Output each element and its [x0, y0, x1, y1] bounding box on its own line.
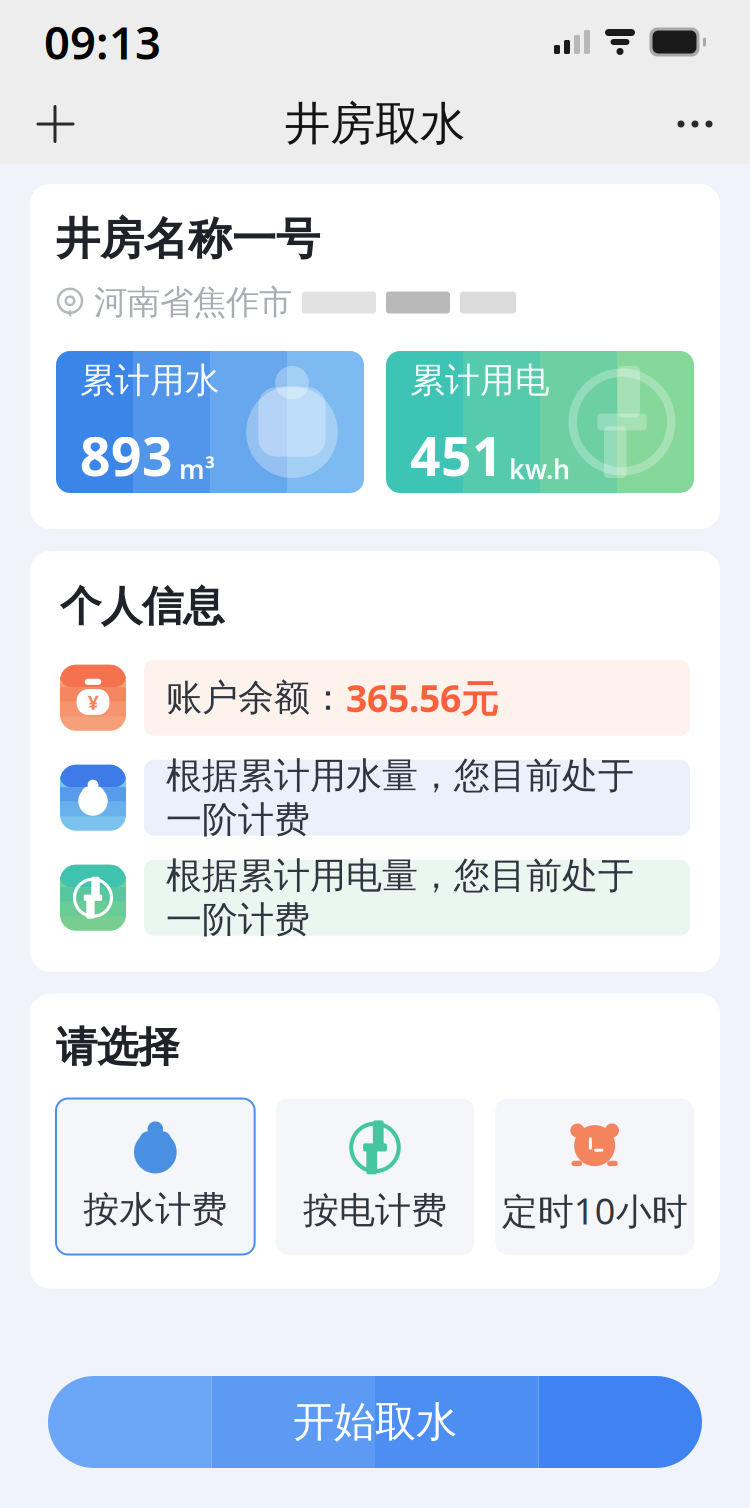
staticText: 365.56元 [346, 673, 498, 723]
button[interactable]: More options [668, 97, 722, 151]
staticText: 累计用水 [80, 359, 220, 402]
staticText: 451 [410, 420, 503, 491]
staticText: 个人信息 [60, 581, 224, 632]
staticText: 河南省焦作市 [94, 282, 292, 323]
staticText: 井房取水 [285, 96, 465, 152]
staticText: 井房名称一号 [56, 212, 320, 266]
staticText: 账户余额： [166, 676, 346, 720]
staticText: kw.h [509, 451, 570, 487]
staticText: 累计用电 [410, 359, 550, 402]
button[interactable]: Close [28, 97, 82, 151]
staticText: 定时10小时 [502, 1187, 688, 1234]
staticText: 按电计费 [303, 1188, 447, 1233]
staticText: 按水计费 [83, 1187, 227, 1232]
button[interactable]: 按电计费 [276, 1098, 474, 1254]
button[interactable]: 开始取水 [48, 1376, 702, 1468]
staticText: 根据累计用电量，您目前处于一阶计费 [166, 853, 634, 942]
staticText: ¥ [87, 689, 98, 715]
staticText: 开始取水 [293, 1397, 457, 1447]
staticText: 请选择 [56, 1022, 179, 1073]
staticText: 893 [80, 420, 173, 491]
button[interactable]: 按水计费 [56, 1098, 255, 1254]
staticText: m³ [179, 451, 215, 487]
staticText: 根据累计用水量，您目前处于一阶计费 [166, 753, 634, 842]
staticText: 09:13 [44, 12, 161, 72]
button[interactable]: 定时10小时 [495, 1098, 694, 1254]
